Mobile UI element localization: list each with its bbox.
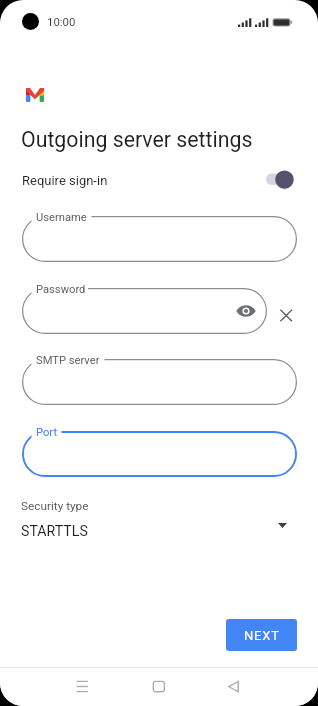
- button[interactable]: SMTP server: [22, 359, 297, 405]
- staticText: SMTP server: [36, 354, 100, 367]
- staticText: Outgoing server settings: [21, 127, 253, 152]
- button[interactable]: Clear: [274, 303, 298, 327]
- staticText: STARTTLS: [21, 523, 88, 540]
- staticText: Username: [36, 211, 87, 224]
- staticText: Port: [36, 426, 58, 439]
- button[interactable]: Port: [22, 431, 297, 477]
- staticText: Require sign-in: [22, 173, 108, 188]
- button[interactable]: Require sign-in: [0, 166, 318, 194]
- button[interactable]: NEXT: [226, 619, 297, 651]
- staticText: Password: [36, 283, 86, 296]
- staticText: NEXT: [244, 628, 280, 643]
- button[interactable]: Back: [214, 667, 255, 706]
- button[interactable]: Menu: [62, 667, 103, 706]
- button[interactable]: Security type: [0, 494, 318, 546]
- staticText: 10:00: [47, 15, 76, 28]
- staticText: Security type: [21, 499, 89, 513]
- button[interactable]: Show password: [234, 299, 258, 323]
- button[interactable]: Home: [138, 667, 179, 706]
- button[interactable]: Username: [22, 216, 297, 262]
- button[interactable]: Password: [22, 288, 267, 334]
